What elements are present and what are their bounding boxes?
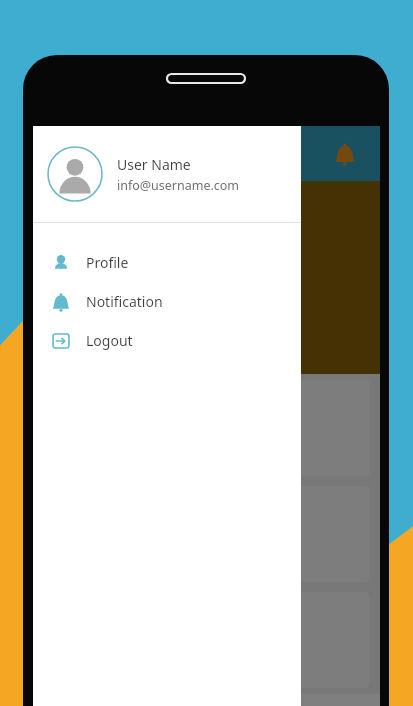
button[interactable]: Promotional Activity	[43, 486, 370, 582]
staticText: Profile	[86, 253, 129, 272]
button[interactable]: User Name	[33, 126, 301, 222]
button[interactable]: Attendance	[43, 380, 370, 476]
button[interactable]: Training & Content	[43, 592, 370, 688]
staticText: Logout	[86, 331, 133, 350]
staticText: Notification	[86, 292, 163, 311]
button[interactable]: Profile	[33, 243, 301, 282]
staticText: info@username.com	[117, 177, 240, 194]
button[interactable]: Notification	[33, 282, 301, 321]
button[interactable]: Logout	[33, 321, 301, 360]
staticText: User Name	[117, 155, 191, 174]
button[interactable]: Notifications	[328, 137, 362, 171]
